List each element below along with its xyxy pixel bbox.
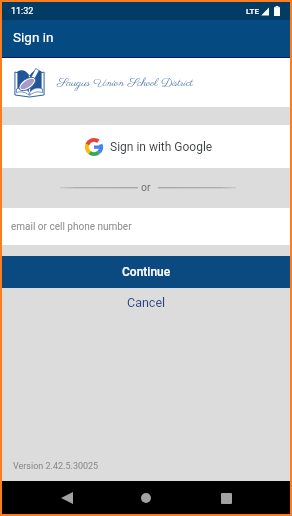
button[interactable]: Cancel	[2, 288, 290, 314]
staticText: or	[141, 181, 151, 193]
button[interactable]: Back	[52, 483, 82, 513]
staticText: Continue	[122, 265, 171, 279]
staticText: Cancel	[127, 295, 166, 310]
staticText: 11:32	[11, 6, 34, 17]
staticText: Version 2.42.5.30025	[13, 461, 99, 472]
staticText: Sign in	[13, 29, 54, 45]
staticText: Sign in with Google	[110, 140, 213, 154]
button[interactable]: email or cell phone number	[2, 208, 290, 245]
button[interactable]: Home	[131, 483, 161, 513]
button[interactable]: Continue	[2, 256, 290, 288]
staticText: email or cell phone number	[11, 221, 132, 233]
button[interactable]: Recent apps	[211, 483, 241, 513]
staticText: LTE	[246, 7, 259, 16]
button[interactable]: Sign in with Google	[2, 125, 290, 168]
staticText: Saugus Union School District	[57, 75, 194, 91]
